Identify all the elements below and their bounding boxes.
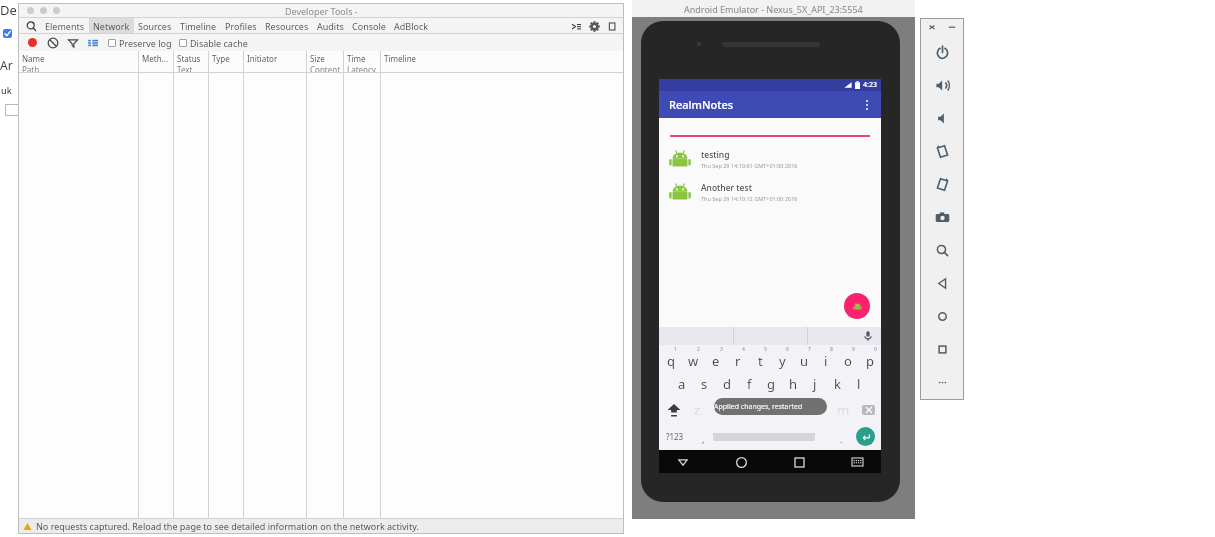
button[interactable]: Home [920,300,964,333]
button[interactable]: Minimize [947,22,957,32]
staticText: 8 [830,346,833,353]
staticText: Meth... [142,53,169,64]
button[interactable]: Hide keyboard [847,452,867,472]
staticText: j [813,375,817,393]
button[interactable]: Settings [589,21,600,32]
button[interactable]: More [920,366,964,399]
button[interactable]: Power [920,36,964,69]
staticText: a [678,375,686,393]
button[interactable]: 6 [771,345,793,371]
button[interactable]: c [735,397,759,423]
button[interactable]: 8 [815,345,837,371]
button[interactable]: Network [89,18,134,34]
button[interactable]: Another test [659,179,881,205]
button[interactable]: 7 [793,345,815,371]
button[interactable]: Console [348,18,390,34]
staticText: Another test [701,182,752,194]
button[interactable]: Recents [789,452,809,472]
button[interactable]: s [693,371,716,397]
button[interactable]: Record [26,36,39,49]
button[interactable]: Disable cache [179,37,248,49]
button[interactable]: Rotate right [920,168,964,201]
button[interactable]: Volume up [920,69,964,102]
button[interactable] [27,7,34,14]
button[interactable]: Audits [313,18,348,34]
button[interactable]: g [760,371,782,397]
button[interactable]: Back [673,452,693,472]
button[interactable]: Add note [844,293,870,319]
staticText: Size [310,53,325,64]
button[interactable]: Zoom [920,234,964,267]
button[interactable]: 0 [859,345,881,371]
button[interactable]: testing [659,146,881,172]
button[interactable]: 2 [682,345,705,371]
staticText: k [834,375,841,393]
staticText: q [667,352,675,370]
staticText: Latency [347,64,376,75]
button[interactable]: Shift [665,401,683,419]
button[interactable]: . [840,433,843,445]
button[interactable]: j [804,371,826,397]
button[interactable]: f [738,371,760,397]
button[interactable]: m [831,397,855,423]
staticText: l [857,375,861,393]
button[interactable]: v [759,397,783,423]
button[interactable]: Close [927,22,937,32]
button[interactable]: Drawer [571,21,582,32]
button[interactable]: 4 [727,345,749,371]
button[interactable]: k [826,371,848,397]
button[interactable]: l [848,371,870,397]
button[interactable] [40,7,47,14]
button[interactable] [53,7,60,14]
button[interactable]: a [670,371,693,397]
button[interactable]: n [807,397,831,423]
button[interactable]: d [716,371,738,397]
button[interactable]: AdBlock [390,18,433,34]
button[interactable]: More tools [607,21,618,32]
button[interactable]: b [783,397,807,423]
button[interactable]: Rotate left [920,135,964,168]
staticText: Sources [138,20,172,32]
staticText: De [0,1,17,19]
button[interactable]: Backspace [862,405,875,415]
button[interactable]: ?123 [666,431,684,442]
staticText: Ar [0,57,13,73]
button[interactable]: Resources [261,18,313,34]
button[interactable]: Back [920,267,964,300]
button[interactable]: More options [857,95,877,115]
staticText: 9 [852,346,855,353]
button[interactable]: Home [731,452,751,472]
button[interactable]: Clear [47,37,59,49]
button[interactable]: Sources [134,18,176,34]
button[interactable]: Search [25,20,38,33]
staticText: Disable cache [190,37,248,49]
button[interactable]: x [710,397,735,423]
button[interactable]: Elements [41,18,89,34]
button[interactable]: Group [87,37,99,49]
button[interactable]: h [782,371,804,397]
staticText: u [800,352,809,370]
button[interactable]: 3 [705,345,727,371]
button[interactable]: Overview [920,333,964,366]
button[interactable]: Volume down [920,102,964,135]
button[interactable]: 1 [659,345,682,371]
staticText: No requests captured. Reload the page to… [36,520,419,532]
button[interactable]: , [702,433,705,445]
staticText: 3 [720,346,723,353]
button[interactable]: Enter [856,427,875,446]
button[interactable]: Preserve log [108,37,172,49]
button[interactable]: Filter [67,37,79,49]
button[interactable]: 9 [837,345,859,371]
staticText: y [779,352,786,370]
staticText: s [701,375,708,393]
staticText: Initiator [247,53,278,64]
staticText: z [694,401,701,419]
button[interactable]: Profiles [221,18,261,34]
button[interactable]: Voice input [862,330,874,342]
staticText: d [723,375,731,393]
button[interactable]: Screenshot [920,201,964,234]
button[interactable]: Timeline [176,18,221,34]
button[interactable]: 5 [749,345,771,371]
